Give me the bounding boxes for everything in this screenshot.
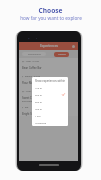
staticText: 125 m — [35, 86, 42, 89]
button[interactable]: Anywhere — [32, 119, 68, 126]
button[interactable]: 125 m — [32, 84, 68, 91]
staticText: 1 km — [35, 114, 41, 117]
staticText: Choose — [38, 6, 63, 15]
staticText: how far you want to explore — [20, 15, 82, 21]
staticText: $ · Bar — [22, 106, 29, 109]
button[interactable]: 500 m — [32, 98, 68, 105]
staticText: Nearby — [58, 53, 66, 56]
staticText: Sweet Cilantro — [22, 96, 40, 100]
button[interactable]: 1 km — [32, 112, 68, 119]
staticText: 839 Grange St, Portland OR 8898 — [22, 100, 56, 103]
staticText: 500 m — [35, 100, 42, 103]
staticText: $ · Bakery · 0.4 mi — [22, 75, 41, 78]
button[interactable]: 250 m — [32, 91, 68, 98]
staticText: 750 m — [35, 107, 42, 110]
staticText: Anywhere — [35, 121, 47, 124]
staticText: Flour Market — [22, 81, 38, 85]
staticText: $$ · Cafe · 0.2 mi — [22, 60, 39, 63]
staticText: 250 m — [35, 93, 42, 96]
staticText: Experiences — [40, 44, 58, 48]
button[interactable]: Account — [72, 45, 75, 48]
staticText: $$ · Thai · 0.6 mi — [22, 90, 39, 93]
button[interactable]: Restaurants — [22, 52, 46, 56]
staticText: Bright Sun — [22, 112, 35, 116]
staticText: Bean Coffee Bar — [22, 66, 42, 70]
button[interactable]: 750 m — [32, 105, 68, 112]
button[interactable]: Experiences — [19, 42, 78, 50]
button[interactable]: Nearby — [54, 52, 69, 57]
staticText: Show experiences within — [35, 79, 66, 83]
staticText: Restaurants — [28, 53, 41, 56]
